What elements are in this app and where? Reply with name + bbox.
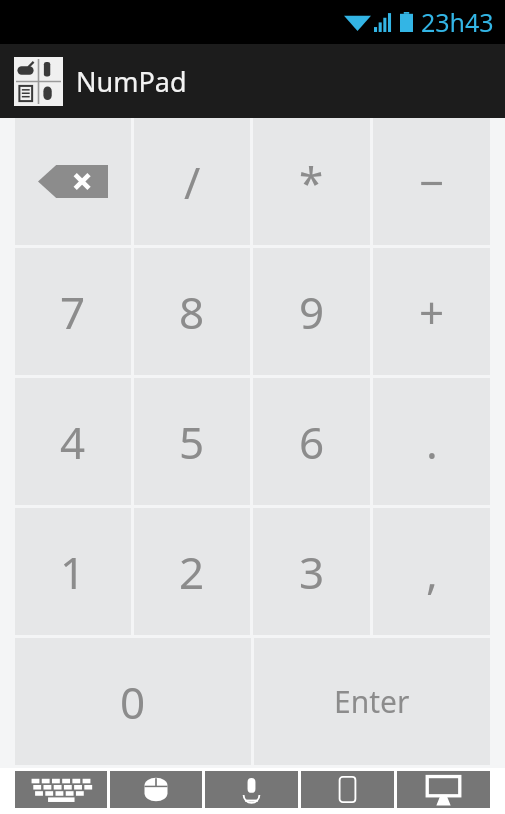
button[interactable]: 2 — [134, 508, 250, 635]
button[interactable]: Monitor — [397, 771, 490, 808]
staticText: Enter — [334, 681, 410, 722]
button[interactable]: Phone — [301, 771, 394, 808]
staticText: 5 — [179, 412, 205, 472]
staticText: * — [299, 152, 324, 212]
staticText: 9 — [299, 282, 325, 342]
staticText: 7 — [60, 282, 86, 342]
button[interactable]: 3 — [253, 508, 370, 635]
staticText: − — [419, 152, 445, 212]
staticText: 4 — [60, 412, 86, 472]
button[interactable]: Microphone — [205, 771, 298, 808]
staticText: / — [184, 152, 201, 212]
staticText: 23h43 — [421, 5, 494, 39]
button[interactable]: , — [373, 508, 490, 635]
staticText: + — [419, 282, 445, 342]
button[interactable]: + — [373, 248, 490, 375]
staticText: 6 — [299, 412, 325, 472]
button[interactable]: 1 — [15, 508, 131, 635]
staticText: 3 — [299, 542, 325, 602]
staticText: 1 — [60, 542, 86, 602]
button[interactable]: . — [373, 378, 490, 505]
button[interactable]: 8 — [134, 248, 250, 375]
staticText: 0 — [120, 672, 146, 732]
button[interactable]: − — [373, 118, 490, 245]
button[interactable]: 5 — [134, 378, 250, 505]
staticText: . — [426, 412, 438, 472]
staticText: 2 — [179, 542, 205, 602]
button[interactable]: * — [253, 118, 370, 245]
button[interactable]: Enter — [254, 638, 490, 765]
button[interactable]: Backspace — [15, 118, 131, 245]
button[interactable]: / — [134, 118, 250, 245]
staticText: NumPad — [76, 63, 187, 100]
button[interactable]: 9 — [253, 248, 370, 375]
staticText: 8 — [179, 282, 205, 342]
button[interactable]: 7 — [15, 248, 131, 375]
button[interactable]: Keyboard — [15, 771, 107, 808]
button[interactable]: 4 — [15, 378, 131, 505]
button[interactable]: 6 — [253, 378, 370, 505]
staticText: , — [426, 542, 438, 602]
button[interactable]: 0 — [15, 638, 251, 765]
button[interactable]: Mouse — [110, 771, 202, 808]
